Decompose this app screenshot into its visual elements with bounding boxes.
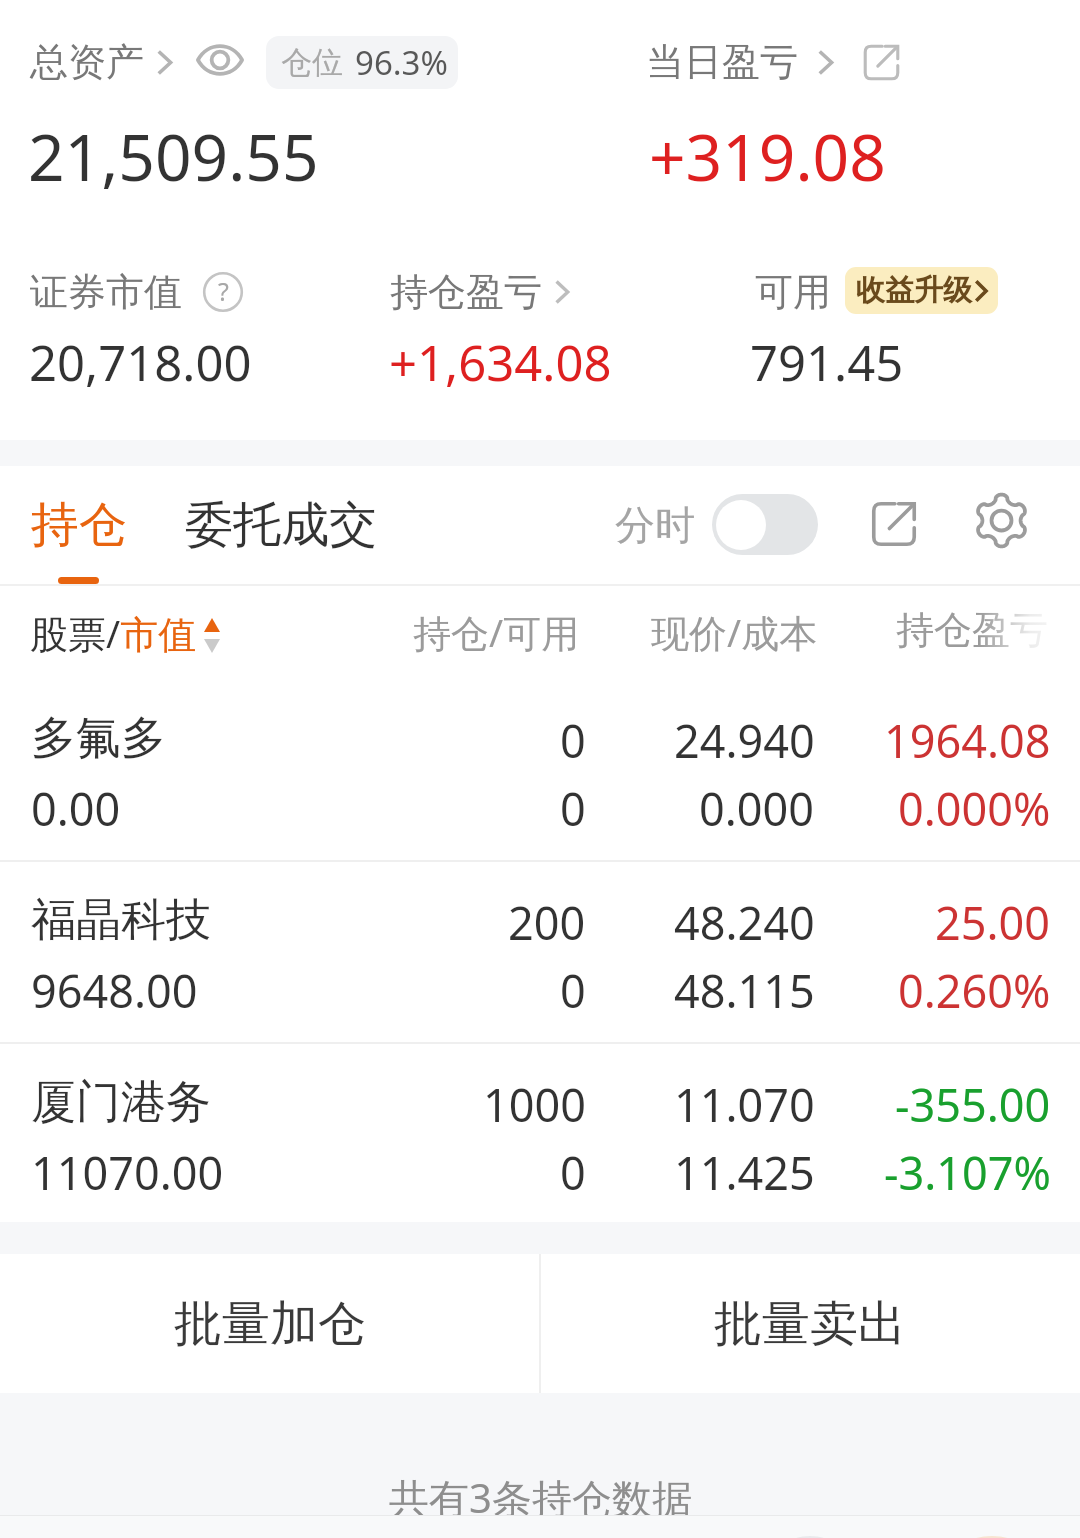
staticText: 可用: [755, 268, 831, 316]
staticText: 0: [560, 778, 586, 839]
staticText: 20,718.00: [29, 329, 252, 396]
staticText: 0.260%: [898, 960, 1051, 1021]
staticText: 厦门港务: [31, 1074, 211, 1131]
staticText: 0: [560, 960, 586, 1021]
staticText: 11.070: [674, 1074, 815, 1135]
button[interactable]: Toggle intraday chart: [712, 494, 818, 555]
staticText: 持仓/可用: [413, 606, 580, 658]
staticText: 48.115: [674, 960, 815, 1021]
staticText: 0: [560, 710, 586, 771]
staticText: 11.425: [674, 1142, 815, 1203]
button[interactable]: 持仓: [7, 477, 151, 573]
staticText: 96.3%: [355, 40, 448, 85]
staticText: 多氟多: [31, 710, 166, 767]
staticText: 0.000: [699, 778, 815, 839]
staticText: +319.08: [649, 113, 886, 200]
staticText: 791.45: [750, 329, 904, 396]
staticText: 当日盈亏: [646, 38, 798, 86]
button[interactable]: 分时: [601, 480, 832, 569]
staticText: 批量加仓: [174, 1294, 366, 1354]
button[interactable]: 仓位: [266, 36, 458, 89]
staticText: 仓位: [281, 43, 343, 82]
button[interactable]: Settings: [973, 492, 1030, 549]
staticText: 总资产: [30, 38, 144, 86]
staticText: 股票/市值: [30, 607, 197, 659]
staticText: 批量卖出: [714, 1294, 906, 1354]
button[interactable]: Open in new window: [871, 501, 917, 547]
button[interactable]: Toggle balance visibility: [196, 38, 244, 82]
staticText: +1,634.08: [389, 329, 612, 396]
staticText: 1964.08: [884, 710, 1051, 771]
staticText: -355.00: [895, 1074, 1051, 1135]
staticText: 24.940: [674, 710, 815, 771]
staticText: 21,509.55: [28, 113, 319, 200]
staticText: 1000: [483, 1074, 586, 1135]
button[interactable]: 批量卖出: [540, 1254, 1080, 1393]
staticText: 收益升级: [856, 272, 972, 309]
button[interactable]: 收益升级: [845, 267, 998, 314]
button[interactable]: 批量加仓: [0, 1254, 540, 1393]
staticText: 现价/成本: [651, 606, 818, 658]
staticText: 持仓盈亏: [390, 268, 542, 316]
staticText: 0.000%: [898, 778, 1051, 839]
button[interactable]: 股票/市值: [22, 600, 201, 664]
staticText: 共有3条持仓数据: [389, 1470, 692, 1525]
button[interactable]: Open in new window: [863, 44, 900, 81]
button[interactable]: 持仓盈亏: [382, 262, 574, 322]
staticText: 48.240: [674, 892, 815, 953]
button[interactable]: Help about securities value: [203, 272, 243, 312]
staticText: 福晶科技: [31, 892, 211, 949]
button[interactable]: 总资产: [22, 30, 177, 94]
button[interactable]: 厦门港务: [0, 1041, 1080, 1223]
button[interactable]: 多氟多: [0, 677, 1080, 859]
button[interactable]: 福晶科技: [0, 859, 1080, 1041]
button[interactable]: 委托成交: [161, 477, 401, 573]
staticText: 200: [508, 892, 586, 953]
staticText: 证券市值: [30, 268, 182, 316]
staticText: 持仓盈亏: [896, 606, 1048, 654]
staticText: ?: [218, 274, 229, 308]
staticText: 9648.00: [31, 960, 198, 1021]
staticText: 11070.00: [31, 1142, 224, 1203]
staticText: 委托成交: [185, 495, 377, 555]
staticText: 持仓: [31, 495, 127, 555]
button[interactable]: 当日盈亏: [638, 30, 838, 94]
staticText: 0: [560, 1142, 586, 1203]
staticText: 0.00: [31, 778, 121, 839]
staticText: -3.107%: [884, 1142, 1051, 1203]
staticText: 25.00: [935, 892, 1051, 953]
staticText: 分时: [615, 500, 695, 550]
